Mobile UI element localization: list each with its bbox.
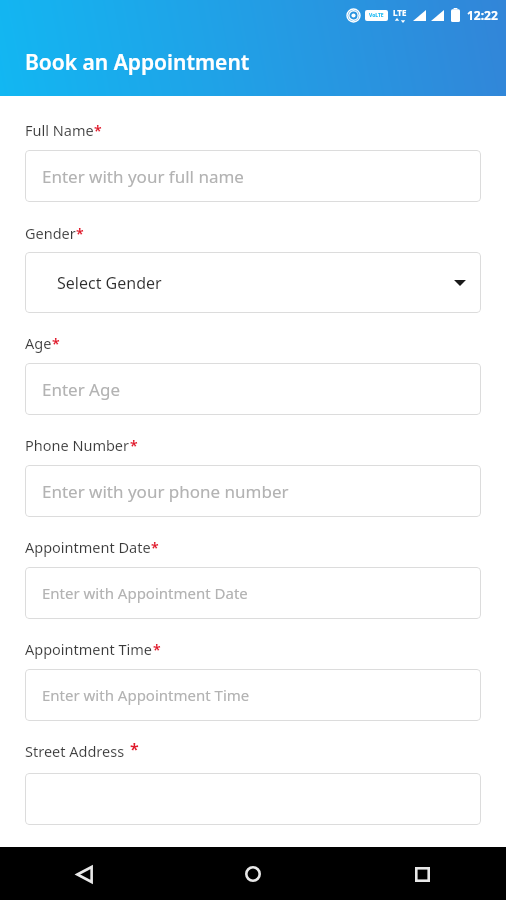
staticText: * (130, 738, 139, 760)
staticText: * (153, 640, 161, 659)
staticText: Book an Appointment (25, 48, 250, 77)
staticText: Enter with Appointment Time (42, 685, 250, 705)
staticText: Enter with your phone number (42, 480, 289, 503)
button[interactable]: Home (229, 850, 277, 898)
button[interactable]: Select Gender (25, 252, 481, 313)
staticText: * (151, 538, 159, 557)
staticText: Appointment Time (25, 639, 153, 659)
staticText: * (52, 334, 60, 353)
button[interactable]: Enter with your phone number (25, 465, 481, 517)
button[interactable]: Back (60, 850, 108, 898)
staticText: Full Name (25, 120, 94, 140)
staticText: * (76, 224, 84, 243)
other: Open gender dropdown (453, 276, 467, 290)
staticText: Gender (25, 223, 76, 243)
staticText: Phone Number (25, 435, 130, 455)
button[interactable]: Enter with Appointment Date (25, 567, 481, 619)
staticText: Enter with Appointment Date (42, 583, 248, 603)
staticText: Enter Age (42, 378, 121, 401)
button[interactable]: Recent apps (398, 850, 446, 898)
staticText: Enter with your full name (42, 165, 244, 188)
staticText: Street Address (25, 741, 125, 761)
button[interactable]: Enter with your full name (25, 150, 481, 202)
button[interactable]: Enter Age (25, 363, 481, 415)
staticText: 12:22 (467, 7, 498, 23)
staticText: Age (25, 333, 52, 353)
staticText: Select Gender (57, 272, 162, 294)
staticText: Appointment Date (25, 537, 151, 557)
button[interactable] (25, 773, 481, 825)
button[interactable]: Enter with Appointment Time (25, 669, 481, 721)
staticText: VoLTE (369, 12, 384, 19)
staticText: * (94, 121, 102, 140)
staticText: * (130, 436, 138, 455)
staticText: LTE (393, 7, 407, 18)
